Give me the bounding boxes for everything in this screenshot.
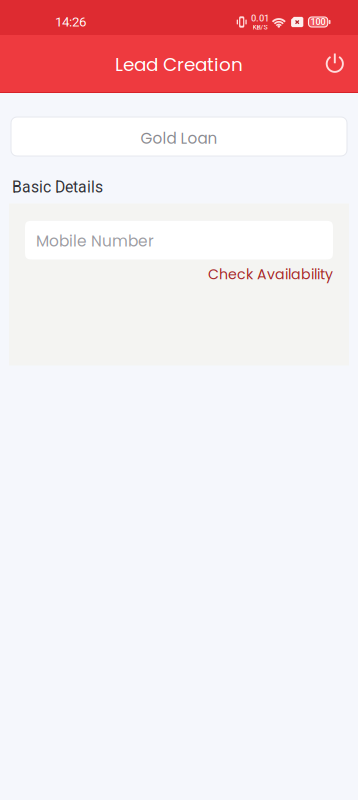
staticText: Basic Details	[12, 178, 103, 196]
staticText: Lead Creation	[115, 52, 243, 77]
button[interactable]: Gold Loan	[11, 117, 347, 156]
staticText: 0.01	[251, 13, 269, 24]
button[interactable]: Check Availability	[202, 259, 339, 287]
button[interactable]: Log out	[314, 39, 356, 87]
staticText: 100	[311, 17, 326, 27]
staticText: KB/S	[253, 23, 268, 31]
staticText: Mobile Number	[36, 230, 154, 252]
staticText: Check Availability	[208, 264, 333, 284]
staticText: Gold Loan	[140, 128, 217, 149]
staticText: 14:26	[55, 14, 86, 30]
